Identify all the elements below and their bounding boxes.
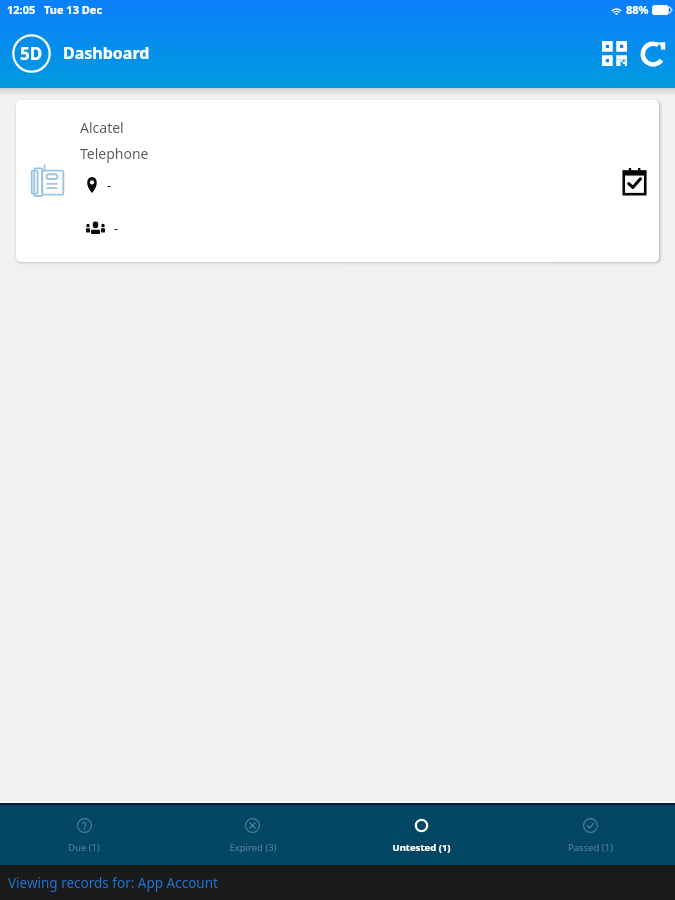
button[interactable]: Refresh (634, 33, 674, 73)
button[interactable]: Expired (3) (168, 805, 337, 865)
staticText: Telephone (80, 144, 149, 163)
button[interactable]: Open menu (12, 34, 51, 73)
staticText: 5D (20, 42, 43, 65)
button[interactable]: Viewing records for: App Account (0, 865, 675, 900)
button[interactable]: Scan QR code (594, 33, 634, 73)
button[interactable]: Schedule test (16, 100, 659, 262)
button[interactable]: Passed (1) (506, 805, 675, 865)
staticText: - (107, 176, 112, 194)
button[interactable]: Schedule test (622, 168, 647, 195)
staticText: - (114, 219, 119, 237)
staticText: 12:05 (7, 2, 36, 17)
staticText: Tue 13 Dec (44, 2, 103, 17)
staticText: Expired (3) (229, 841, 277, 854)
staticText: Alcatel (80, 118, 124, 137)
staticText: Dashboard (63, 42, 150, 64)
staticText: Untested (1) (392, 841, 451, 854)
staticText: Passed (1) (568, 841, 613, 854)
staticText: 88% (626, 2, 649, 17)
staticText: Viewing records for: App Account (8, 874, 218, 892)
button[interactable]: Due (1) (0, 805, 168, 865)
staticText: Due (1) (68, 841, 100, 854)
button[interactable]: Untested (1) (337, 805, 506, 865)
